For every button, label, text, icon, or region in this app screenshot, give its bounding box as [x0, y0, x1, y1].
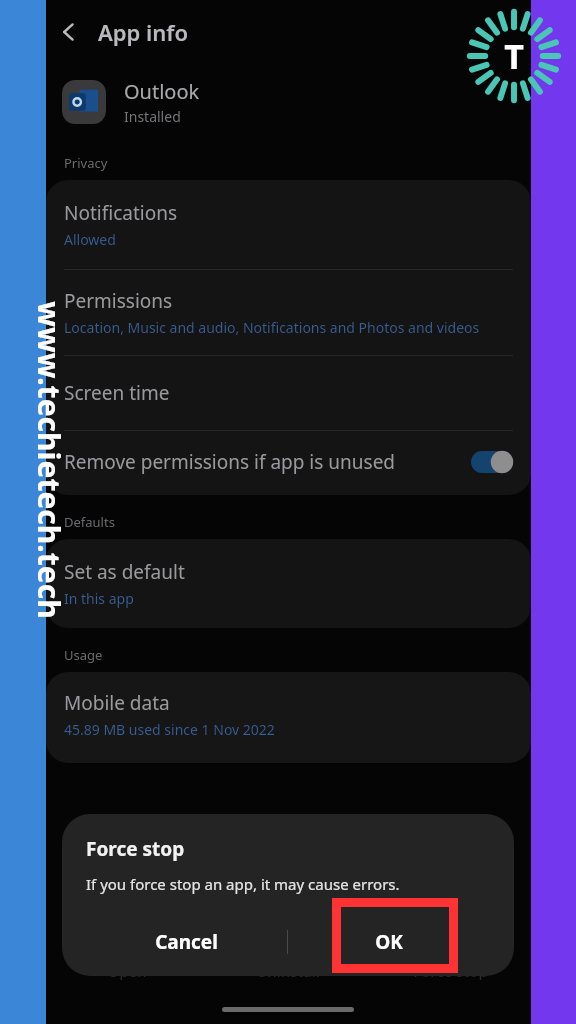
- button[interactable]: Set as default: [46, 539, 531, 628]
- button[interactable]: Remove permissions toggle: [471, 451, 513, 473]
- staticText: Permissions: [64, 288, 173, 314]
- staticText: Mobile data: [64, 690, 170, 716]
- button[interactable]: Permissions: [46, 270, 531, 355]
- button[interactable]: Cancel: [86, 912, 287, 972]
- button[interactable]: Notifications: [46, 180, 531, 269]
- button[interactable]: Outlook: [46, 64, 531, 140]
- staticText: Usage: [64, 646, 103, 664]
- staticText: In this app: [64, 589, 134, 608]
- button[interactable]: Force stop: [369, 954, 531, 988]
- staticText: Remove permissions if app is unused: [64, 449, 396, 475]
- staticText: Notifications: [64, 200, 178, 226]
- button[interactable]: Back: [46, 9, 92, 55]
- staticText: Allowed: [64, 230, 116, 249]
- staticText: Outlook: [124, 78, 200, 105]
- button[interactable]: Open: [46, 954, 207, 988]
- button[interactable]: Uninstall: [207, 954, 369, 988]
- staticText: Installed: [124, 107, 181, 126]
- staticText: If you force stop an app, it may cause e…: [86, 874, 400, 894]
- staticText: Force stop: [413, 961, 488, 981]
- button[interactable]: Remove permissions if app is unused: [46, 431, 531, 495]
- staticText: OK: [375, 929, 403, 955]
- staticText: T: [504, 33, 524, 79]
- staticText: Privacy: [64, 154, 108, 172]
- staticText: Open: [107, 961, 147, 981]
- staticText: Uninstall: [256, 961, 320, 981]
- staticText: Location, Music and audio, Notifications…: [64, 318, 480, 337]
- staticText: Screen time: [64, 380, 170, 406]
- staticText: Force stop: [86, 836, 185, 862]
- staticText: Defaults: [64, 513, 115, 531]
- button[interactable]: Mobile data: [46, 672, 531, 763]
- staticText: App info: [98, 17, 189, 47]
- button[interactable]: Screen time: [46, 356, 531, 430]
- button[interactable]: OK: [288, 912, 490, 972]
- staticText: Set as default: [64, 559, 185, 585]
- staticText: www.techietech.tech: [30, 240, 70, 680]
- staticText: Cancel: [155, 929, 218, 955]
- staticText: 45.89 MB used since 1 Nov 2022: [64, 720, 275, 739]
